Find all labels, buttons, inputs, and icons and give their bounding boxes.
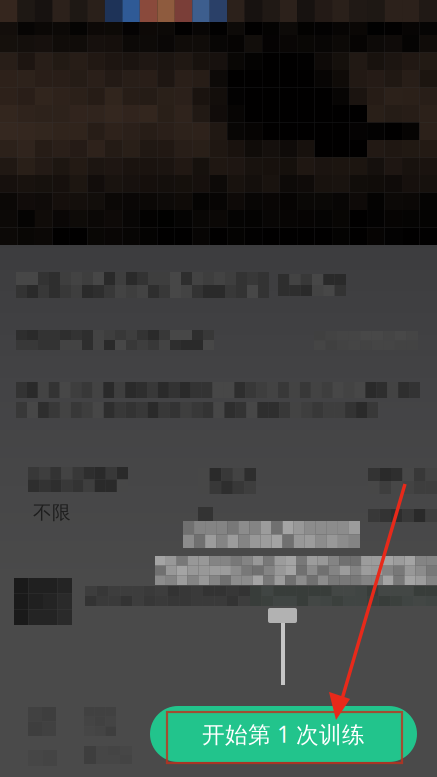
button[interactable]: 开始第 1 次训练 bbox=[150, 706, 417, 762]
button[interactable]: 收藏 bbox=[28, 707, 57, 766]
staticText: 不限 bbox=[33, 501, 71, 524]
button[interactable]: 分享 bbox=[84, 707, 132, 764]
staticText: 开始第 1 次训练 bbox=[202, 719, 365, 749]
